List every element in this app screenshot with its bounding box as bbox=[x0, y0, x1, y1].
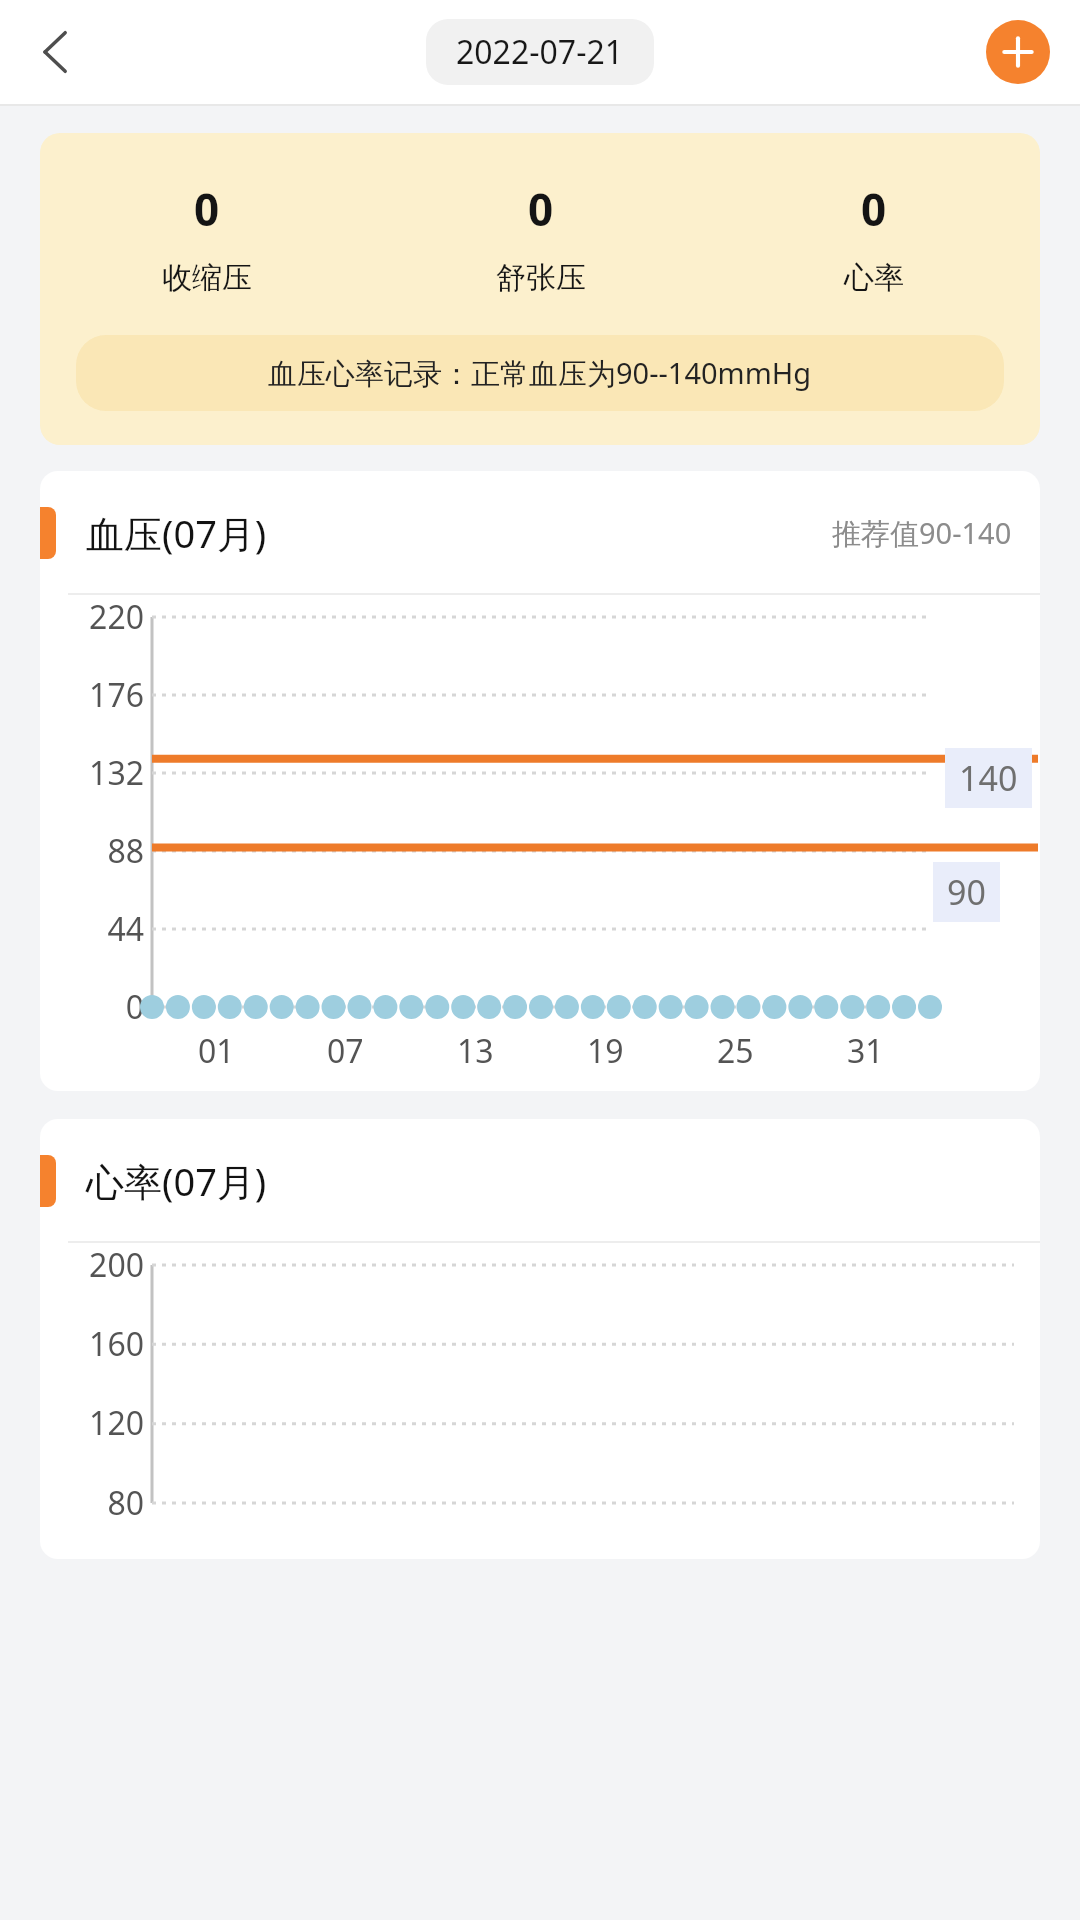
staticText: 0 bbox=[125, 985, 144, 1029]
button[interactable]: 0 bbox=[40, 133, 1040, 445]
staticText: 90 bbox=[947, 869, 986, 915]
staticText: 132 bbox=[89, 751, 144, 795]
staticText: 140 bbox=[959, 755, 1018, 801]
staticText: 220 bbox=[89, 595, 144, 639]
staticText: 31 bbox=[847, 1029, 884, 1073]
staticText: 0 bbox=[194, 179, 220, 239]
staticText: 舒张压 bbox=[496, 259, 586, 297]
staticText: 01 bbox=[198, 1029, 235, 1073]
button[interactable]: 2022-07-21 bbox=[426, 19, 654, 85]
staticText: 44 bbox=[107, 907, 144, 951]
staticText: 0 bbox=[528, 179, 554, 239]
button[interactable]: 血压(07月) bbox=[40, 471, 1040, 1091]
button[interactable]: Add record bbox=[986, 20, 1050, 84]
staticText: 25 bbox=[717, 1029, 754, 1073]
staticText: 心率 bbox=[844, 259, 904, 297]
staticText: 80 bbox=[107, 1481, 144, 1525]
staticText: 0 bbox=[861, 179, 887, 239]
staticText: 88 bbox=[107, 829, 144, 873]
staticText: 200 bbox=[89, 1243, 144, 1287]
staticText: 160 bbox=[89, 1322, 144, 1366]
staticText: 血压(07月) bbox=[86, 507, 267, 559]
staticText: 2022-07-21 bbox=[456, 30, 624, 74]
button[interactable]: Back bbox=[14, 10, 98, 94]
staticText: 176 bbox=[89, 673, 144, 717]
staticText: 13 bbox=[457, 1029, 494, 1073]
staticText: 19 bbox=[587, 1029, 624, 1073]
staticText: 心率(07月) bbox=[86, 1155, 267, 1207]
staticText: 血压心率记录：正常血压为90--140mmHg bbox=[268, 353, 812, 393]
button[interactable]: 心率(07月) bbox=[40, 1119, 1040, 1559]
staticText: 07 bbox=[327, 1029, 364, 1073]
staticText: 120 bbox=[89, 1401, 144, 1445]
staticText: 收缩压 bbox=[162, 259, 252, 297]
staticText: 推荐值90-140 bbox=[832, 513, 1012, 553]
